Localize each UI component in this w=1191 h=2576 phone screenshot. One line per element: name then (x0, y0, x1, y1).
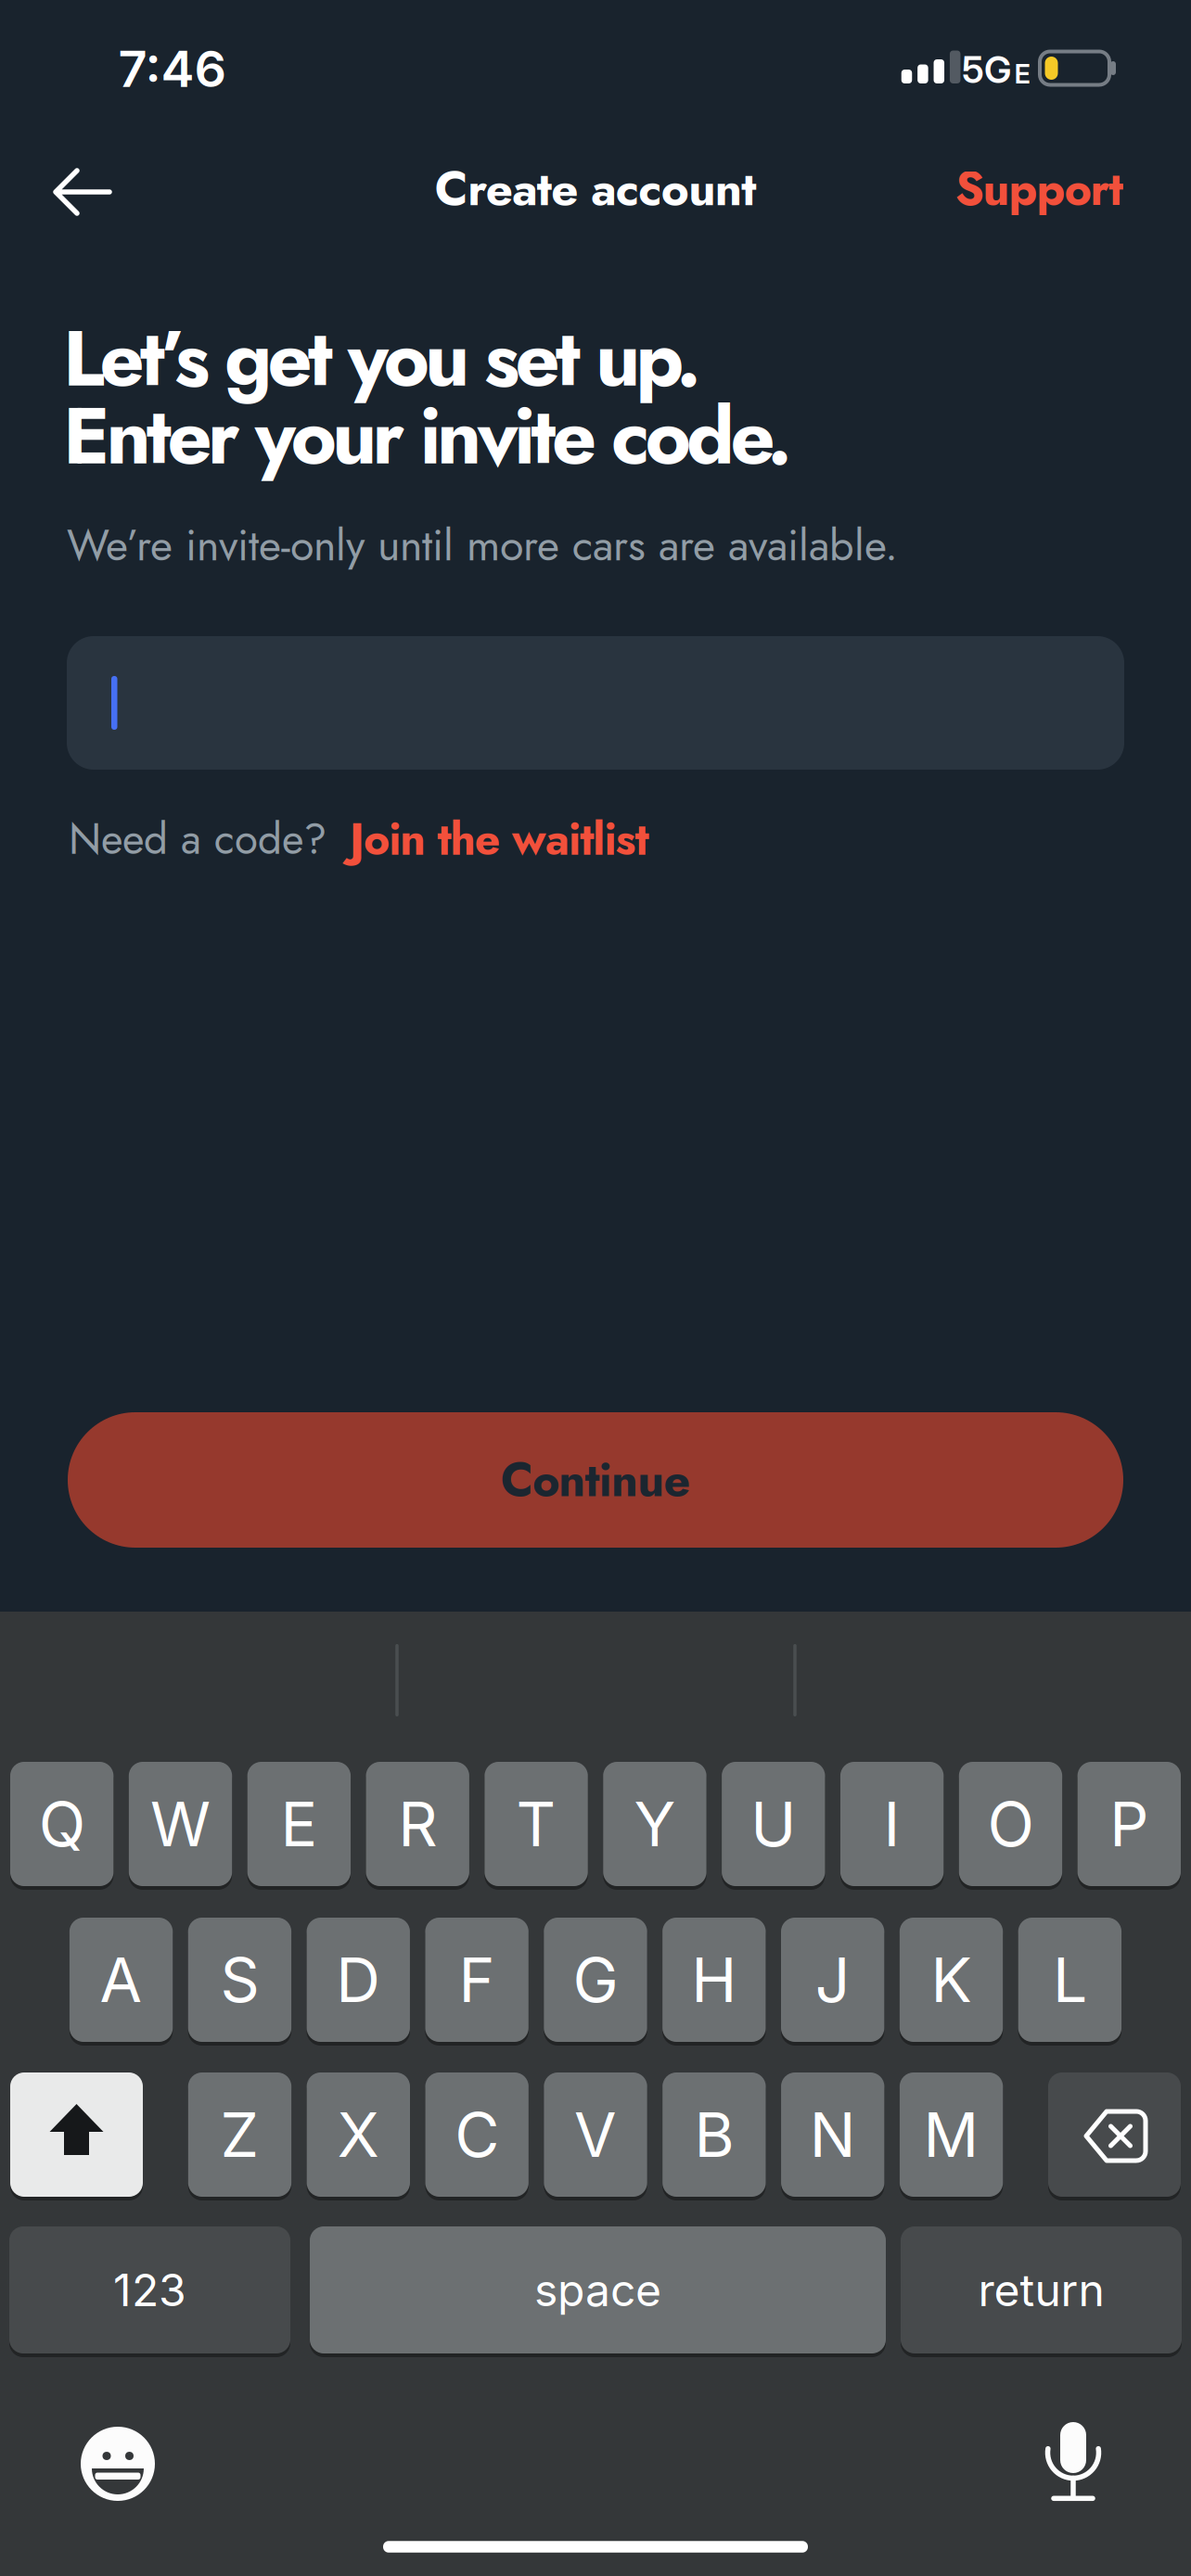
button[interactable]: A (69, 1918, 173, 2042)
button[interactable]: B (662, 2072, 766, 2197)
staticText: Q (39, 1787, 85, 1861)
button[interactable]: G (544, 1918, 647, 2042)
button[interactable]: E (247, 1762, 351, 1886)
button[interactable]: D (307, 1918, 410, 2042)
staticText: 5G (962, 47, 1011, 92)
staticText: Create account (435, 155, 756, 223)
button[interactable]: W (129, 1762, 232, 1886)
staticText: N (809, 2098, 856, 2172)
staticText: C (455, 2098, 499, 2172)
staticText: Join the waitlist (350, 807, 649, 871)
button[interactable]: R (366, 1762, 469, 1886)
button[interactable]: 123 (9, 2226, 290, 2353)
button[interactable]: Support (955, 155, 1124, 222)
staticText: M (923, 2098, 979, 2172)
staticText: Let’s get you set up. (63, 302, 701, 415)
staticText: Support (955, 155, 1124, 222)
button[interactable]: S (188, 1918, 291, 2042)
staticText: I (884, 1787, 900, 1861)
staticText: K (931, 1943, 972, 2017)
button[interactable]: P (1077, 1762, 1181, 1886)
button[interactable]: X (307, 2072, 410, 2197)
button[interactable]: Shift (10, 2072, 143, 2197)
button[interactable]: Continue (68, 1412, 1123, 1548)
staticText: P (1110, 1787, 1149, 1861)
button[interactable]: space (310, 2226, 886, 2353)
staticText: Need a code? (69, 809, 327, 870)
staticText: T (516, 1787, 556, 1861)
button[interactable]: Delete (1048, 2072, 1181, 2197)
staticText: U (751, 1787, 796, 1861)
staticText: Z (220, 2098, 259, 2172)
staticText: L (1053, 1943, 1087, 2017)
staticText: X (337, 2098, 379, 2172)
button[interactable]: N (781, 2072, 884, 2197)
button[interactable]: return (901, 2226, 1182, 2353)
staticText: J (815, 1943, 850, 2017)
button[interactable]: J (781, 1918, 884, 2042)
staticText: E (280, 1787, 318, 1861)
staticText: B (694, 2098, 734, 2172)
staticText: E (1014, 57, 1030, 90)
staticText: F (459, 1943, 495, 2017)
button[interactable]: V (544, 2072, 647, 2197)
staticText: Enter your invite code. (63, 380, 792, 493)
staticText: V (574, 2098, 617, 2172)
button[interactable]: Q (10, 1762, 113, 1886)
button[interactable]: L (1018, 1918, 1121, 2042)
button[interactable]: T (485, 1762, 588, 1886)
staticText: Y (634, 1787, 676, 1861)
staticText: H (691, 1943, 737, 2017)
button[interactable]: Back (50, 166, 115, 218)
button[interactable]: M (900, 2072, 1003, 2197)
button[interactable]: Y (603, 1762, 706, 1886)
staticText: S (220, 1943, 259, 2017)
staticText: Continue (501, 1446, 690, 1513)
staticText: R (398, 1787, 437, 1861)
staticText: W (150, 1787, 211, 1861)
staticText: 123 (113, 2263, 186, 2317)
staticText: A (100, 1943, 142, 2017)
button[interactable]: Invite code (67, 636, 1124, 770)
staticText: space (534, 2263, 661, 2317)
button[interactable]: C (425, 2072, 529, 2197)
button[interactable]: Dictate (1041, 2422, 1106, 2511)
button[interactable]: H (662, 1918, 766, 2042)
button[interactable]: Join the waitlist (350, 807, 649, 871)
staticText: O (987, 1787, 1034, 1861)
button[interactable]: Z (188, 2072, 291, 2197)
staticText: G (573, 1943, 618, 2017)
button[interactable]: I (840, 1762, 944, 1886)
button[interactable]: K (900, 1918, 1003, 2042)
button[interactable]: O (959, 1762, 1062, 1886)
staticText: We’re invite-only until more cars are av… (67, 514, 898, 576)
staticText: return (978, 2263, 1104, 2317)
button[interactable]: U (722, 1762, 825, 1886)
button[interactable]: F (425, 1918, 528, 2042)
staticText: 7:46 (118, 38, 227, 99)
button[interactable]: Emoji (78, 2424, 158, 2504)
staticText: D (336, 1943, 381, 2017)
